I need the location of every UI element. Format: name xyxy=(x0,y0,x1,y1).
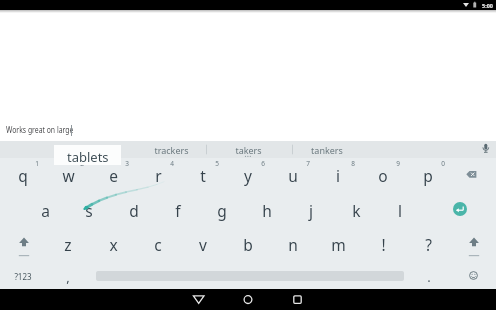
staticText: 0 xyxy=(441,159,445,168)
button[interactable] xyxy=(458,232,490,258)
button[interactable]: . xyxy=(407,265,451,289)
button[interactable]: x xyxy=(91,232,135,256)
staticText: z xyxy=(64,234,72,255)
button[interactable]: c xyxy=(136,232,180,256)
staticText: trackers xyxy=(154,144,189,156)
button[interactable]: y xyxy=(226,163,270,187)
staticText: v xyxy=(199,234,207,255)
staticText: f xyxy=(175,200,181,221)
staticText: k xyxy=(352,200,361,221)
staticText: 6 xyxy=(261,159,265,168)
staticText: q xyxy=(18,165,28,186)
button[interactable] xyxy=(458,264,490,286)
button[interactable]: q xyxy=(1,163,45,187)
button[interactable] xyxy=(184,289,214,310)
staticText: , xyxy=(66,268,70,286)
button[interactable]: r xyxy=(136,163,180,187)
staticText: 7 xyxy=(306,159,310,168)
staticText: 1 xyxy=(35,159,39,168)
staticText: j xyxy=(309,200,313,221)
button[interactable]: tankers xyxy=(297,142,357,157)
button[interactable]: ! xyxy=(361,232,405,256)
button[interactable]: o xyxy=(361,163,405,187)
staticText: c xyxy=(154,234,162,255)
staticText: takers xyxy=(235,144,262,156)
button[interactable]: e xyxy=(91,163,135,187)
staticText: d xyxy=(129,200,139,221)
button[interactable]: b xyxy=(226,232,270,256)
staticText: b xyxy=(243,234,253,255)
staticText: tankers xyxy=(311,144,343,156)
staticText: n xyxy=(288,234,298,255)
staticText: 5 xyxy=(215,159,219,168)
button[interactable]: w xyxy=(46,163,90,187)
button[interactable]: s xyxy=(67,198,111,222)
button[interactable]: j xyxy=(289,198,333,222)
button[interactable]: takers xyxy=(218,142,278,157)
staticText: ? xyxy=(425,234,432,255)
button[interactable]: g xyxy=(200,198,244,222)
staticText: w xyxy=(62,165,75,186)
button[interactable]: z xyxy=(46,232,90,256)
staticText: s xyxy=(85,200,93,221)
staticText: a xyxy=(41,200,50,221)
staticText: h xyxy=(262,200,272,221)
button[interactable]: , xyxy=(46,265,90,289)
button[interactable]: ? xyxy=(406,232,450,256)
button[interactable]: n xyxy=(271,232,315,256)
button[interactable] xyxy=(233,289,263,310)
staticText: 8 xyxy=(351,159,355,168)
staticText: r xyxy=(155,165,162,186)
button[interactable]: p xyxy=(406,163,450,187)
button[interactable]: v xyxy=(181,232,225,256)
staticText: t xyxy=(200,165,206,186)
staticText: ! xyxy=(381,234,386,255)
staticText: p xyxy=(423,165,433,186)
staticText: u xyxy=(288,165,298,186)
staticText: 5:00 xyxy=(482,2,493,9)
button[interactable]: l xyxy=(378,198,422,222)
staticText: Works great on large xyxy=(6,123,74,136)
button[interactable]: tablets xyxy=(54,145,121,165)
staticText: o xyxy=(378,165,388,186)
button[interactable]: k xyxy=(334,198,378,222)
staticText: 4 xyxy=(170,159,174,168)
staticText: l xyxy=(398,200,402,221)
button[interactable]: ?123 xyxy=(3,265,43,287)
staticText: 3 xyxy=(125,159,129,168)
staticText: tablets xyxy=(67,148,109,166)
button[interactable]: trackers xyxy=(141,142,201,157)
button[interactable]: u xyxy=(271,163,315,187)
button[interactable]: a xyxy=(23,198,67,222)
staticText: . xyxy=(427,268,431,286)
staticText: y xyxy=(244,165,252,186)
staticText: e xyxy=(109,165,118,186)
staticText: i xyxy=(336,165,340,186)
button[interactable]: t xyxy=(181,163,225,187)
staticText: 2 xyxy=(80,159,84,168)
staticText: m xyxy=(331,234,346,255)
button[interactable] xyxy=(8,232,40,258)
staticText: x xyxy=(109,234,118,255)
staticText: ?123 xyxy=(14,271,32,282)
button[interactable] xyxy=(283,289,313,310)
staticText: 9 xyxy=(396,159,400,168)
button[interactable]: h xyxy=(245,198,289,222)
button[interactable]: m xyxy=(316,232,360,256)
staticText: g xyxy=(217,200,227,221)
button[interactable]: f xyxy=(156,198,200,222)
button[interactable]: i xyxy=(316,163,360,187)
button[interactable]: d xyxy=(112,198,156,222)
button[interactable] xyxy=(458,163,490,185)
button[interactable] xyxy=(453,202,467,216)
